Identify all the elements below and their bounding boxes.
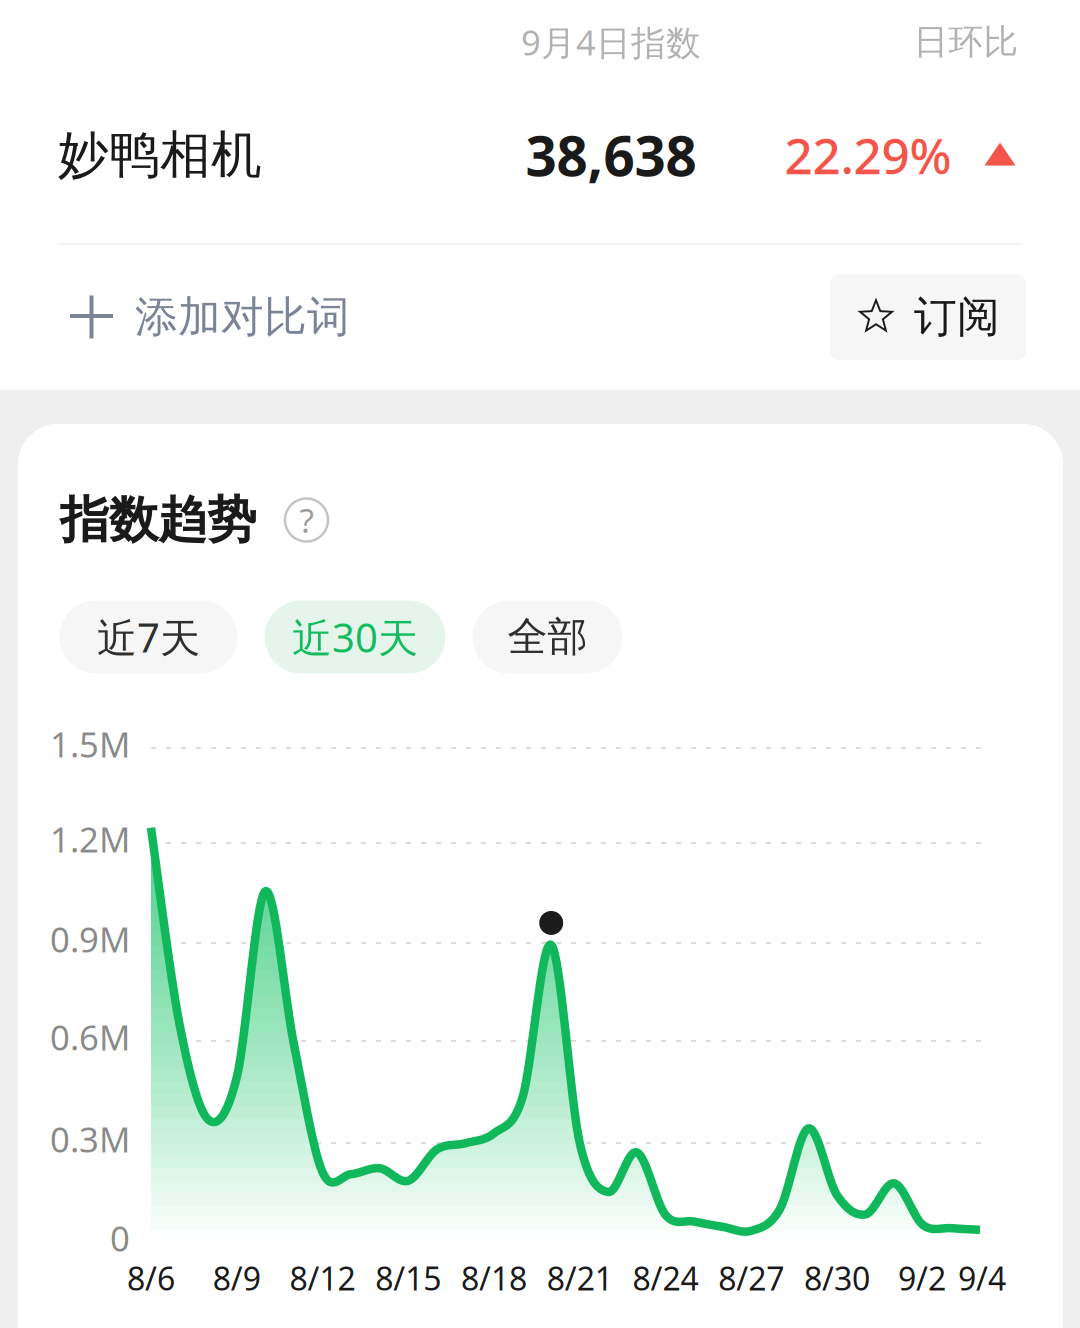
staticText: 近7天	[97, 610, 200, 663]
staticText: 妙鸭相机	[58, 124, 262, 186]
staticText: 8/27	[718, 1257, 784, 1299]
staticText: 8/9	[213, 1257, 261, 1299]
staticText: ?	[299, 498, 313, 542]
staticText: 1.2M	[50, 816, 130, 862]
staticText: 0.6M	[50, 1014, 130, 1060]
button[interactable]: 添加对比词	[50, 262, 370, 372]
staticText: 0	[110, 1215, 130, 1261]
staticText: 8/24	[633, 1257, 699, 1299]
staticText: 近30天	[292, 610, 418, 663]
staticText: 8/6	[127, 1257, 175, 1299]
staticText: 38,638	[525, 119, 696, 191]
staticText: 8/30	[804, 1257, 870, 1299]
staticText: 1.5M	[50, 721, 130, 767]
button[interactable]: 订阅	[830, 274, 1026, 360]
button[interactable]: 近30天	[264, 600, 445, 673]
staticText: 8/15	[375, 1257, 441, 1299]
staticText: 22.29%	[784, 122, 951, 188]
staticText: 9/2	[898, 1257, 946, 1299]
staticText: 8/21	[547, 1257, 613, 1299]
staticText: 0.9M	[50, 916, 130, 962]
staticText: 8/12	[289, 1257, 355, 1299]
staticText: 0.3M	[50, 1116, 130, 1162]
staticText: 全部	[507, 612, 587, 661]
staticText: 指数趋势	[60, 490, 256, 550]
button[interactable]: 全部	[472, 600, 622, 673]
staticText: 9/4	[958, 1257, 1006, 1299]
staticText: 8/18	[461, 1257, 527, 1299]
staticText: 9月4日指数	[521, 19, 701, 65]
button[interactable]: 近7天	[59, 600, 237, 673]
staticText: 日环比	[913, 21, 1018, 63]
staticText: 添加对比词	[135, 291, 350, 343]
staticText: 订阅	[914, 291, 1000, 343]
